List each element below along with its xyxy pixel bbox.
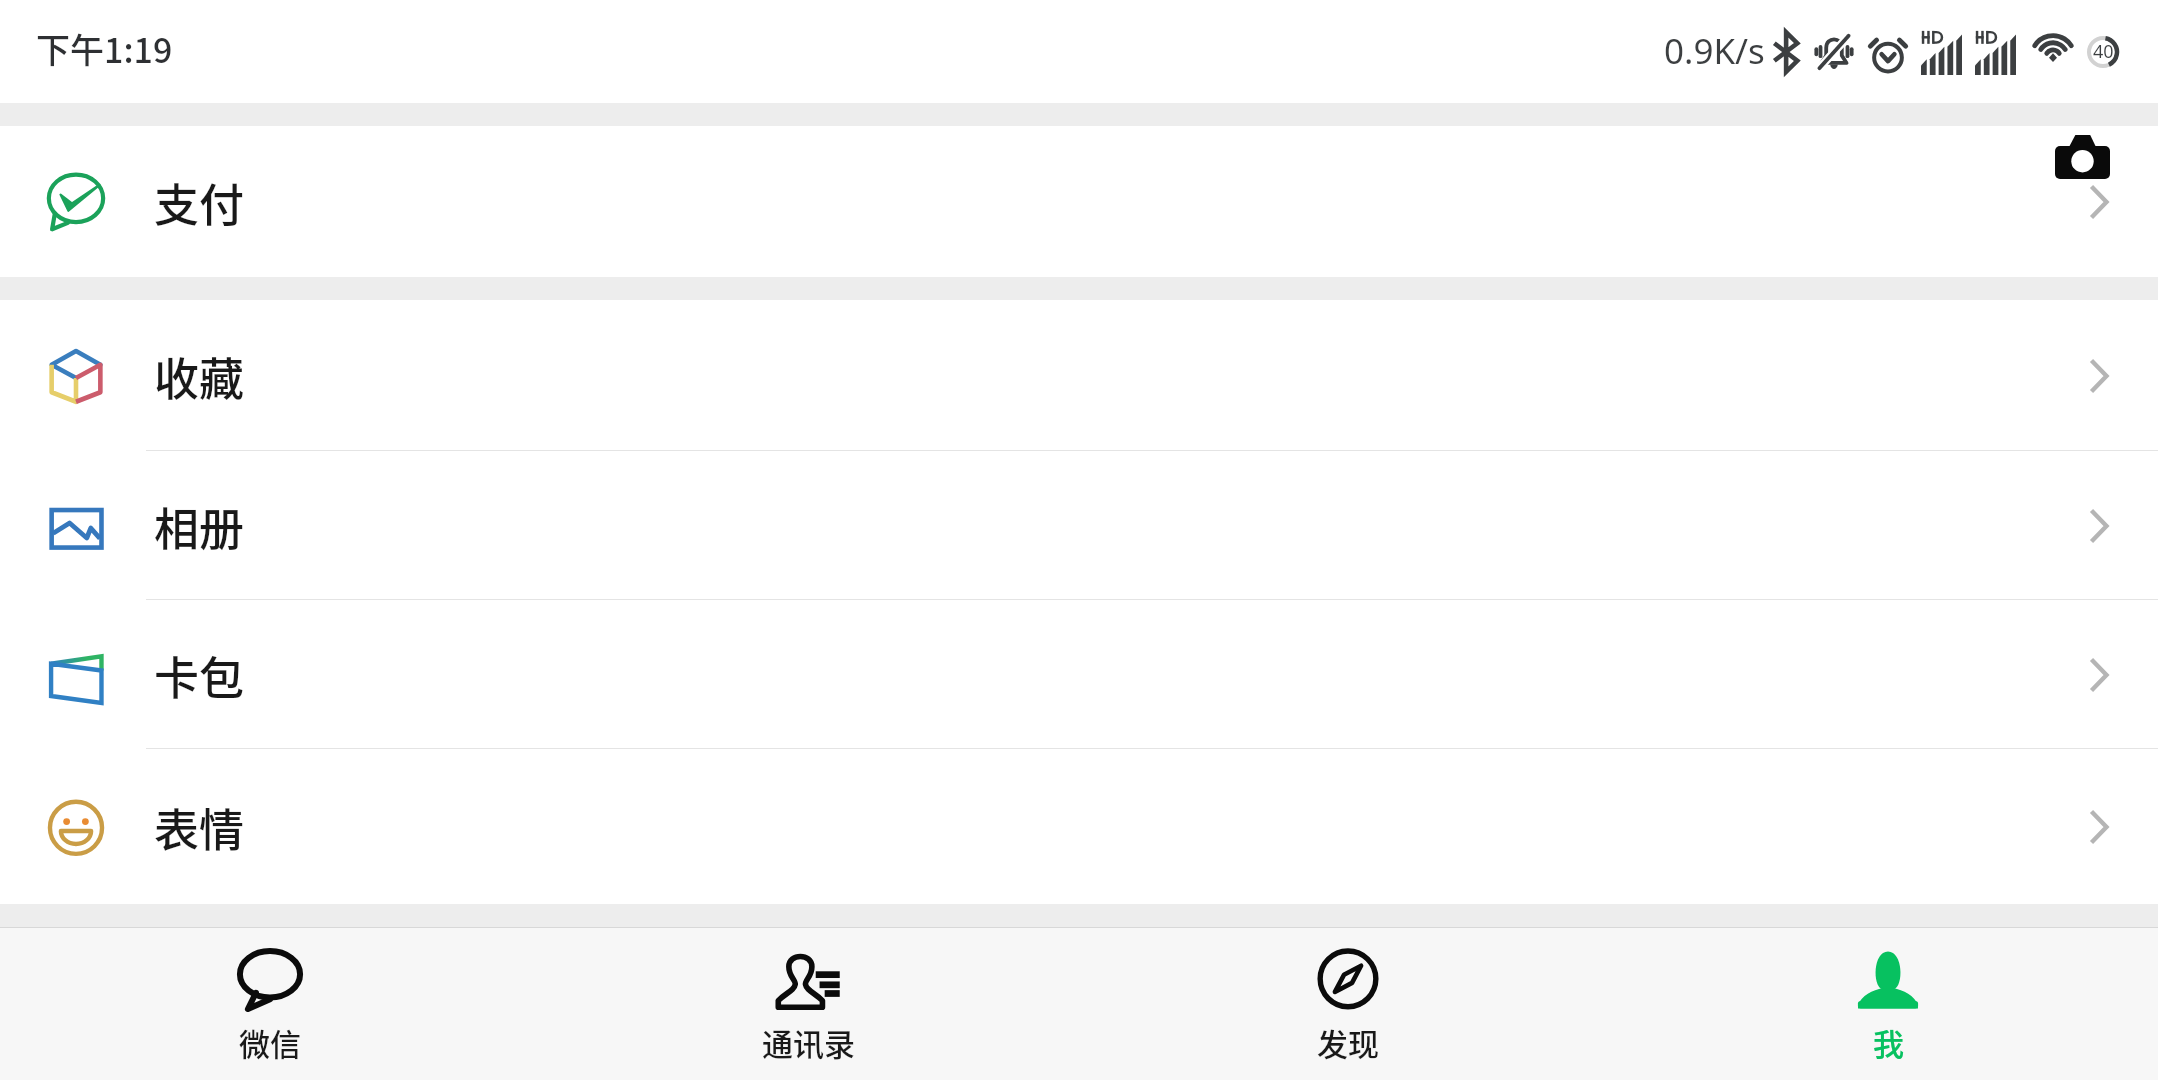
button[interactable]: 微信 bbox=[0, 928, 539, 1080]
button[interactable]: 相册 bbox=[0, 451, 2158, 600]
staticText: 支付 bbox=[154, 170, 245, 235]
staticText: 微信 bbox=[239, 1020, 301, 1065]
button[interactable]: 通讯录 bbox=[539, 928, 1078, 1080]
staticText: 通讯录 bbox=[762, 1020, 855, 1065]
button[interactable]: 发现 bbox=[1078, 928, 1618, 1080]
staticText: 相册 bbox=[154, 494, 245, 559]
staticText: 表情 bbox=[154, 795, 245, 860]
staticText: 我 bbox=[1873, 1020, 1904, 1065]
button[interactable]: 我 bbox=[1618, 928, 2158, 1080]
button[interactable]: 支付 bbox=[0, 126, 2158, 277]
staticText: 40 bbox=[2093, 39, 2114, 64]
staticText: 卡包 bbox=[154, 643, 245, 708]
button[interactable]: Camera bbox=[2052, 131, 2112, 183]
staticText: 0.9K/s bbox=[1664, 27, 1765, 75]
button[interactable]: 收藏 bbox=[0, 300, 2158, 451]
button[interactable]: 表情 bbox=[0, 749, 2158, 904]
button[interactable]: 卡包 bbox=[0, 600, 2158, 749]
staticText: 下午1:19 bbox=[36, 24, 173, 73]
staticText: 发现 bbox=[1317, 1020, 1379, 1065]
staticText: 收藏 bbox=[154, 344, 245, 409]
